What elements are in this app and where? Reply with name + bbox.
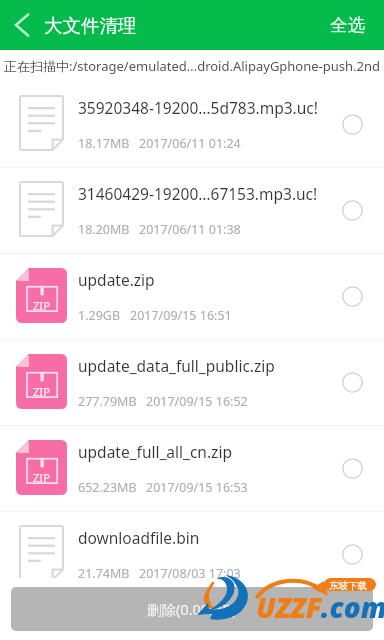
staticText: 全选	[330, 14, 365, 36]
button[interactable]: 35920348-19200…5d783.mp3.uc!	[0, 82, 384, 167]
staticText: 21.74MB	[78, 565, 130, 582]
staticText: ZIP	[33, 470, 50, 485]
staticText: 正在扫描中:/storage/emulated…droid.AlipayGpho…	[4, 57, 381, 75]
button[interactable]: 全选	[312, 0, 384, 50]
staticText: 277.79MB	[78, 393, 137, 410]
staticText: 652.23MB	[78, 479, 137, 496]
staticText: 2017/06/11 01:24	[139, 135, 241, 152]
staticText: 大文件清理	[44, 14, 137, 37]
button[interactable]: 删除(0.00MB)	[11, 587, 373, 631]
button[interactable]: ZIP	[0, 254, 384, 339]
button[interactable]: Back	[0, 0, 44, 50]
button[interactable]: 31460429-19200…67153.mp3.uc!	[0, 168, 384, 253]
staticText: 2017/08/03 17:03	[139, 565, 241, 582]
button[interactable]: Select file	[320, 512, 384, 597]
button[interactable]: downloadfile.bin	[0, 512, 384, 597]
staticText: 1.29GB	[78, 307, 121, 324]
staticText: ZIP	[33, 384, 50, 399]
staticText: update_full_all_cn.zip	[78, 441, 232, 462]
staticText: 2017/06/11 01:38	[139, 221, 241, 238]
staticText: update.zip	[78, 269, 155, 290]
button[interactable]: Select file	[320, 82, 384, 167]
button[interactable]: Select file	[320, 168, 384, 253]
button[interactable]: Select file	[320, 340, 384, 425]
button[interactable]: Select file	[320, 254, 384, 339]
staticText: downloadfile.bin	[78, 527, 200, 548]
staticText: UZZF	[256, 588, 322, 626]
staticText: 删除(0.00MB)	[147, 599, 237, 619]
staticText: update_data_full_public.zip	[78, 355, 275, 376]
staticText: .com	[321, 588, 384, 626]
staticText: ZIP	[33, 298, 50, 313]
staticText: 31460429-19200…67153.mp3.uc!	[78, 183, 318, 204]
staticText: 35920348-19200…5d783.mp3.uc!	[78, 97, 318, 118]
staticText: 2017/09/15 16:52	[146, 393, 248, 410]
button[interactable]: Select file	[320, 426, 384, 511]
button[interactable]: ZIP	[0, 340, 384, 425]
staticText: 18.20MB	[78, 221, 130, 238]
staticText: 2017/09/15 16:53	[146, 479, 248, 496]
staticText: 18.17MB	[78, 135, 130, 152]
staticText: 东坡下载	[329, 580, 367, 592]
button[interactable]: ZIP	[0, 426, 384, 511]
staticText: 2017/09/15 16:51	[130, 307, 232, 324]
